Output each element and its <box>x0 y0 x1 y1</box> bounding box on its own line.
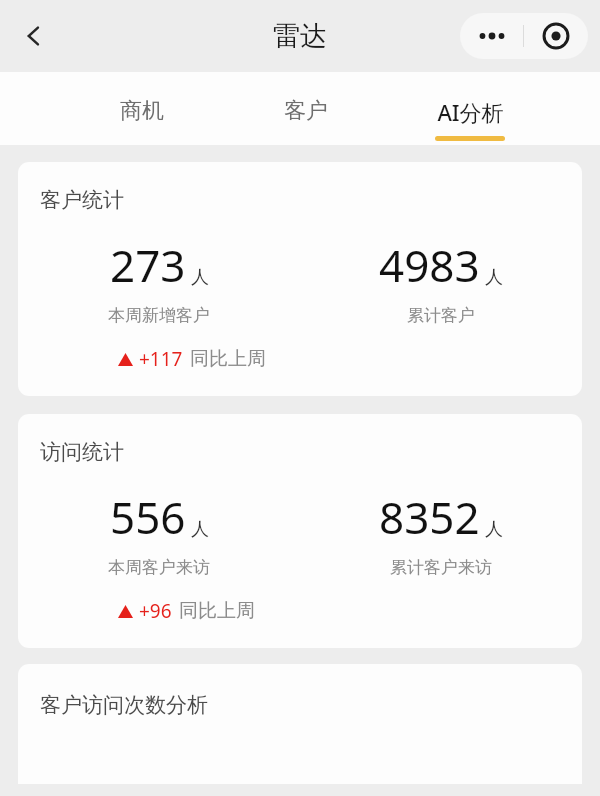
staticText: +96 <box>139 598 172 624</box>
staticText: 客户统计 <box>40 187 124 213</box>
staticText: 累计客户来访 <box>390 557 492 578</box>
staticText: 本周客户来访 <box>108 557 210 578</box>
staticText: 人 <box>191 266 209 289</box>
staticText: 同比上周 <box>190 347 266 371</box>
staticText: 人 <box>485 518 503 541</box>
button[interactable]: 商机 <box>60 72 224 145</box>
staticText: +117 <box>139 346 183 372</box>
button[interactable]: 客户统计 <box>18 162 582 396</box>
button[interactable]: 访问统计 <box>18 414 582 648</box>
button[interactable]: Back <box>12 14 56 58</box>
staticText: 人 <box>485 266 503 289</box>
staticText: 8352 <box>379 487 480 547</box>
staticText: 4983 <box>379 235 480 295</box>
button[interactable]: 客户访问次数分析 <box>18 664 582 784</box>
staticText: 客户访问次数分析 <box>40 692 208 718</box>
staticText: 273 <box>110 235 186 295</box>
staticText: 客户 <box>284 97 328 125</box>
staticText: 累计客户 <box>407 305 475 326</box>
button[interactable]: More <box>460 13 523 59</box>
staticText: 人 <box>191 518 209 541</box>
staticText: 商机 <box>120 97 164 125</box>
button[interactable]: 客户 <box>224 72 388 145</box>
button[interactable]: AI分析 <box>388 72 552 145</box>
button[interactable]: Target <box>524 13 588 59</box>
staticText: 雷达 <box>273 19 327 53</box>
staticText: 本周新增客户 <box>108 305 210 326</box>
staticText: 访问统计 <box>40 439 124 465</box>
staticText: AI分析 <box>437 97 504 127</box>
staticText: 556 <box>110 487 186 547</box>
staticText: 同比上周 <box>179 599 255 623</box>
